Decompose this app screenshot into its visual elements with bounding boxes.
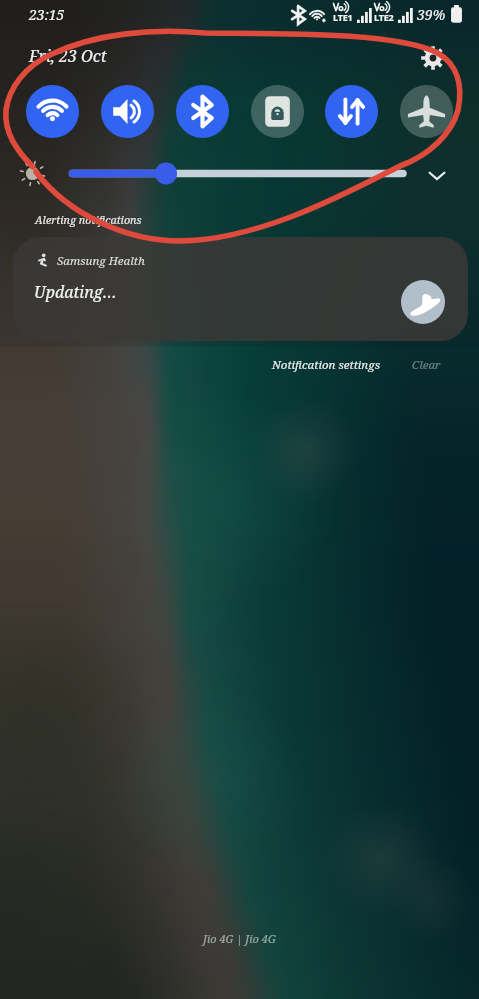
staticText: 23:15 <box>29 5 65 24</box>
staticText: 39% <box>417 5 446 24</box>
button[interactable] <box>68 162 408 185</box>
button[interactable]: Brightness <box>16 157 49 190</box>
staticText: LTE1 <box>333 11 353 23</box>
button[interactable]: Wi-Fi <box>26 85 79 138</box>
staticText: Notification settings <box>272 357 380 373</box>
button[interactable]: Airplane mode <box>400 85 453 138</box>
staticText: Alerting notifications <box>35 212 142 227</box>
button[interactable]: Notification settings <box>265 352 387 378</box>
button[interactable]: Sound <box>101 85 154 138</box>
staticText: LTE2 <box>374 11 394 23</box>
staticText: Jio 4G | Jio 4G <box>203 931 276 946</box>
button[interactable]: Samsung Health <box>401 280 445 324</box>
button[interactable]: Bluetooth <box>176 85 229 138</box>
staticText: Samsung Health <box>57 253 145 269</box>
button[interactable]: Mobile data <box>325 85 378 138</box>
button[interactable]: Settings <box>420 45 446 71</box>
button[interactable]: Clear <box>405 352 448 378</box>
staticText: Clear <box>412 357 441 373</box>
button[interactable]: Lock <box>251 85 304 138</box>
staticText: Fri, 23 Oct <box>29 45 107 67</box>
staticText: Updating… <box>34 281 117 303</box>
button[interactable]: Samsung Health <box>13 237 468 341</box>
button[interactable]: Expand <box>421 159 453 191</box>
